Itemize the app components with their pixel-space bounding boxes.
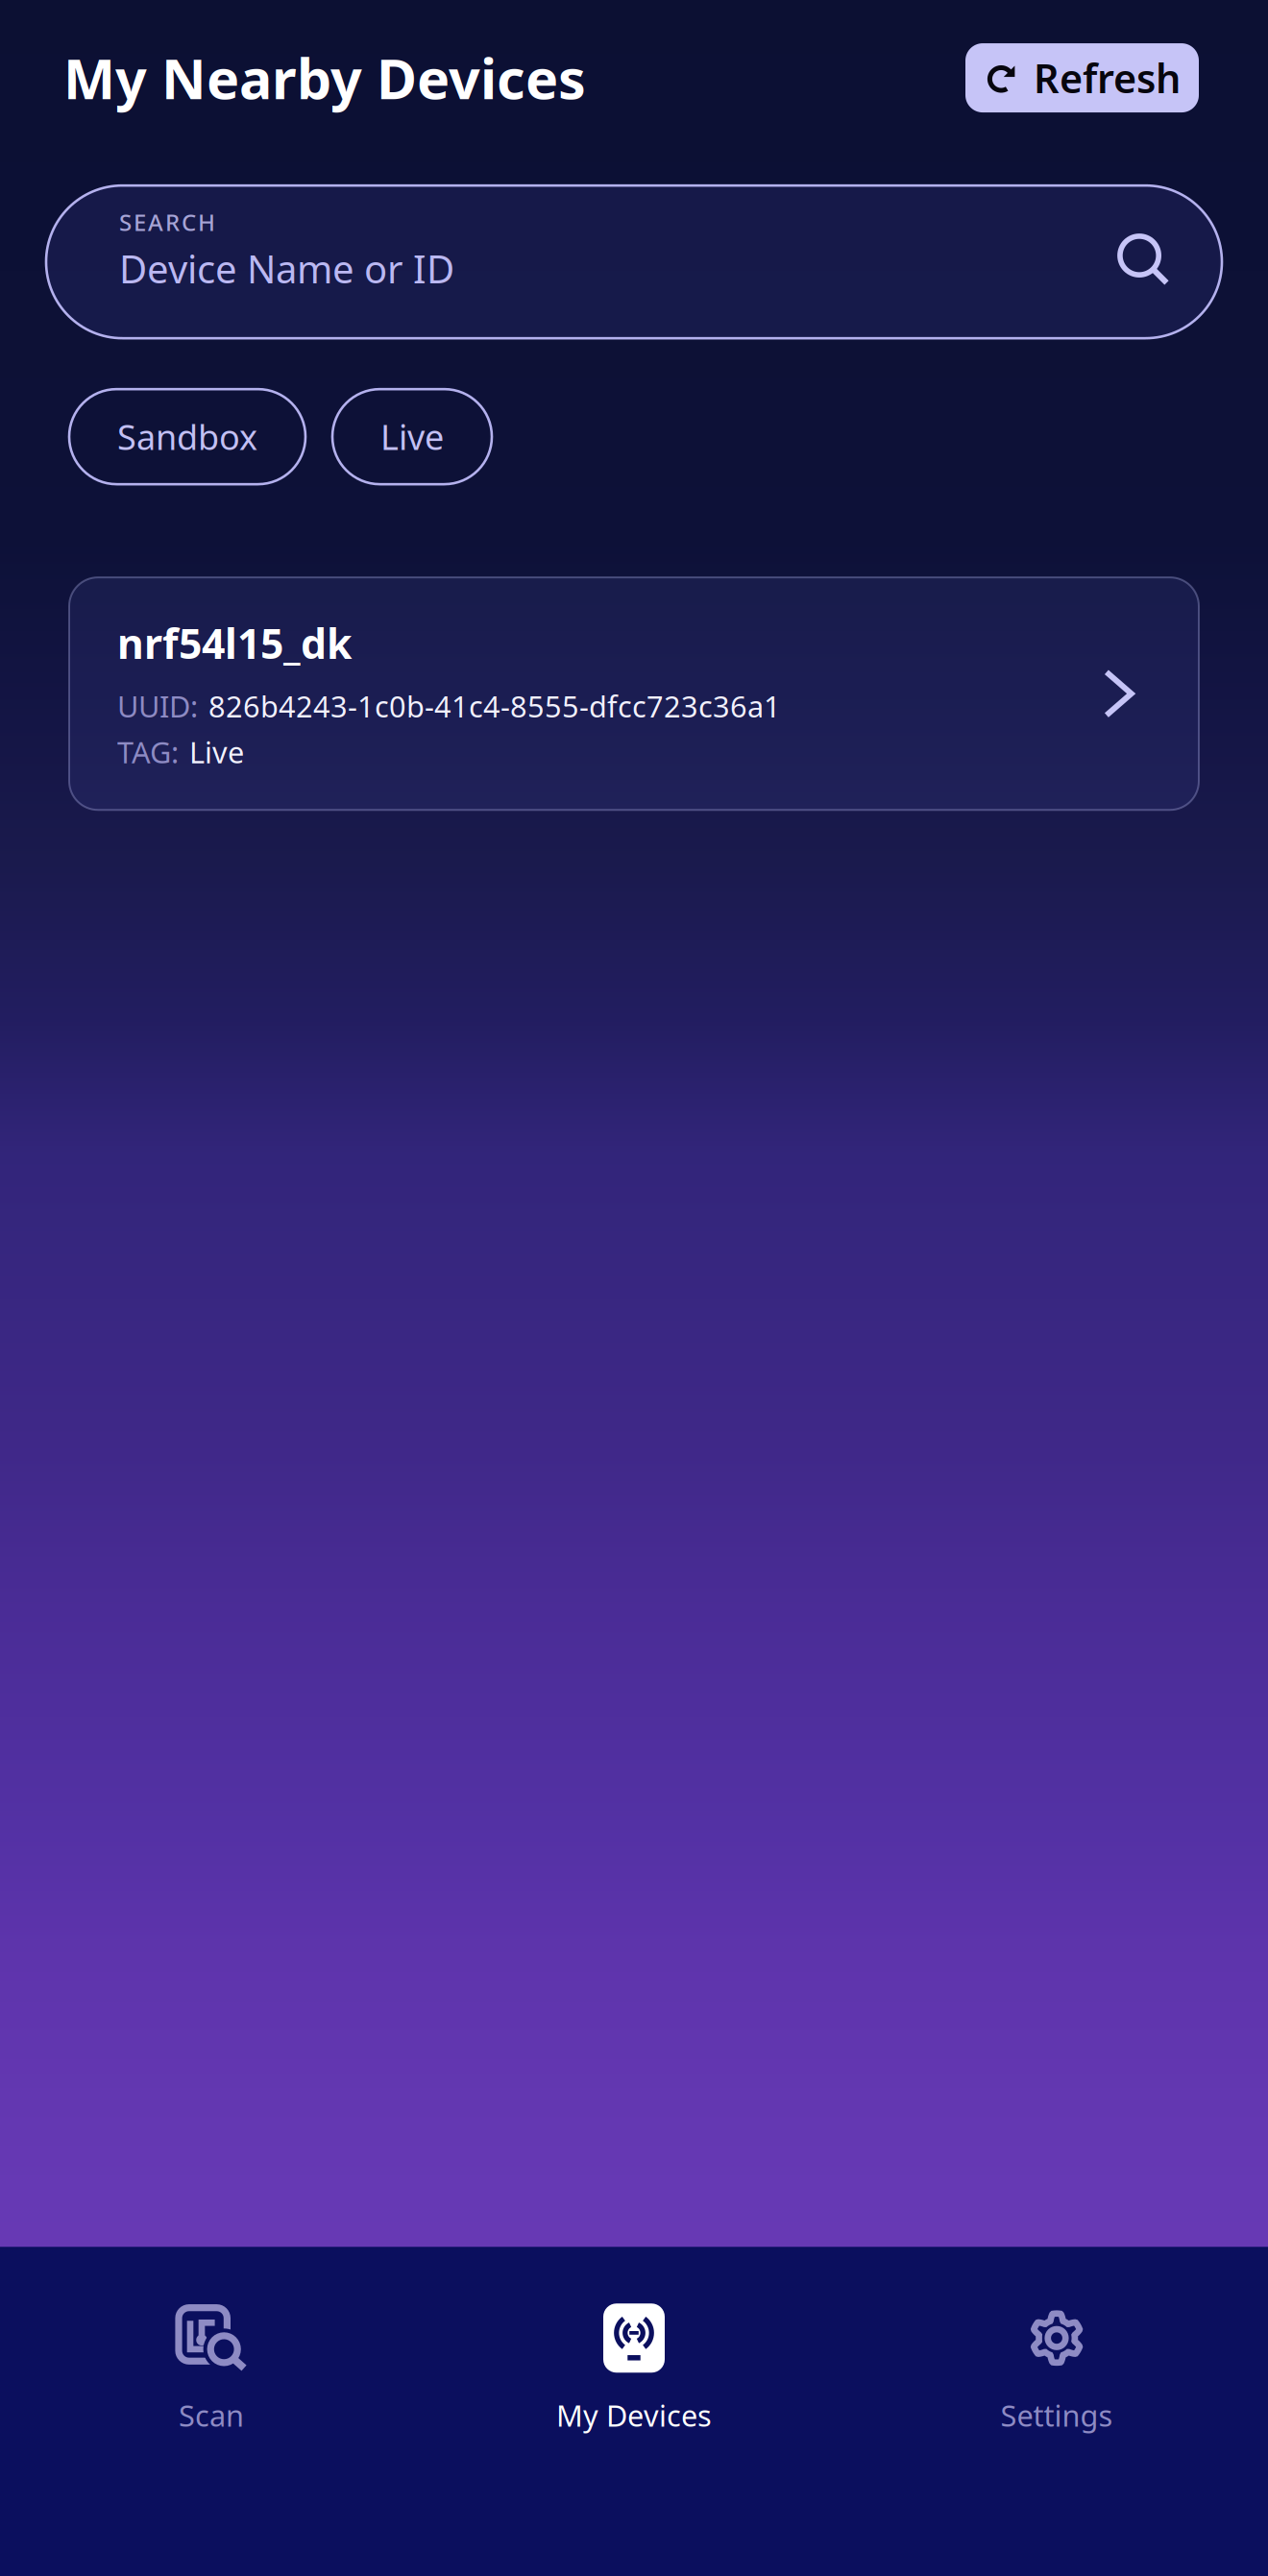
button[interactable]: Refresh — [965, 43, 1199, 112]
staticText: Refresh — [1034, 51, 1181, 104]
staticText: Sandbox — [117, 414, 257, 460]
staticText: 826b4243-1c0b-41c4-8555-dfcc723c36a1 — [208, 687, 781, 726]
staticText: Live — [189, 732, 244, 771]
button[interactable]: Sandbox — [69, 389, 305, 484]
staticText: Scan — [179, 2396, 244, 2435]
button[interactable]: Scan — [0, 2304, 423, 2435]
staticText: Settings — [1000, 2396, 1113, 2435]
staticText: Live — [380, 414, 444, 460]
staticText: nrf54l15_dk — [117, 616, 352, 670]
staticText: TAG: — [117, 732, 179, 771]
staticText: My Nearby Devices — [63, 41, 586, 114]
button[interactable]: nrf54l15_dk — [69, 577, 1199, 810]
button[interactable]: Live — [332, 389, 492, 484]
button[interactable]: Settings — [845, 2304, 1268, 2435]
button[interactable]: My Devices — [423, 2304, 845, 2435]
staticText: SEARCH — [119, 207, 215, 237]
staticText: UUID: — [117, 687, 198, 726]
staticText: Device Name or ID — [119, 243, 454, 294]
staticText: My Devices — [556, 2396, 712, 2435]
